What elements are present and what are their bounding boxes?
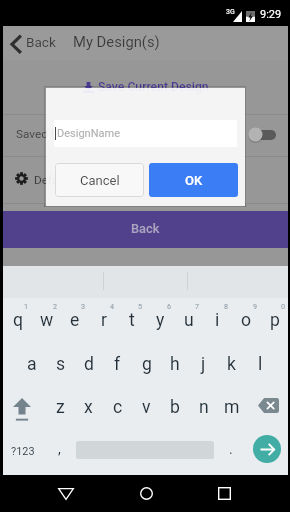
- button[interactable]: Saved Designs: [3, 115, 288, 157]
- button[interactable]: o: [232, 298, 261, 342]
- staticText: o: [241, 310, 252, 331]
- button[interactable]: Default Design: [3, 157, 288, 203]
- staticText: j: [201, 354, 206, 375]
- staticText: p: [270, 310, 280, 331]
- staticText: m: [224, 397, 240, 418]
- staticText: Back: [131, 221, 160, 236]
- staticText: z: [56, 397, 65, 418]
- staticText: ,: [58, 441, 61, 457]
- staticText: Save Current Design: [98, 80, 209, 94]
- staticText: q: [13, 310, 23, 331]
- button[interactable]: j: [189, 342, 218, 386]
- button[interactable]: t: [117, 298, 146, 342]
- staticText: 5: [138, 302, 143, 310]
- button[interactable]: g: [132, 342, 161, 386]
- staticText: 4: [110, 302, 115, 310]
- staticText: Cancel: [80, 173, 120, 188]
- button[interactable]: ,: [45, 429, 74, 473]
- button[interactable]: Enter: [253, 435, 281, 463]
- staticText: g: [142, 354, 152, 375]
- staticText: c: [113, 397, 123, 418]
- button[interactable]: OK: [149, 163, 238, 197]
- button[interactable]: s: [46, 342, 75, 386]
- button[interactable]: d: [74, 342, 103, 386]
- staticText: u: [184, 310, 194, 331]
- button[interactable]: Home: [122, 475, 170, 512]
- staticText: 3G: [226, 8, 235, 16]
- button[interactable]: Shift: [3, 385, 45, 429]
- staticText: My Design(s): [73, 33, 160, 50]
- staticText: 2: [53, 302, 58, 310]
- staticText: e: [70, 310, 80, 331]
- staticText: Saved Designs: [16, 127, 93, 141]
- button[interactable]: c: [103, 385, 132, 429]
- staticText: Default Design: [34, 173, 111, 187]
- button[interactable]: ?123: [3, 429, 45, 473]
- staticText: 1: [24, 302, 29, 310]
- button[interactable]: Save Current Design: [3, 60, 288, 114]
- staticText: a: [27, 354, 37, 375]
- button[interactable]: .: [216, 429, 245, 473]
- staticText: n: [199, 397, 209, 418]
- button[interactable]: Back: [3, 211, 288, 248]
- button[interactable]: b: [160, 385, 189, 429]
- button[interactable]: Cancel: [55, 163, 144, 197]
- staticText: 9: [253, 302, 258, 310]
- staticText: x: [84, 397, 93, 418]
- button[interactable]: h: [160, 342, 189, 386]
- button[interactable]: i: [203, 298, 232, 342]
- button[interactable]: z: [46, 385, 75, 429]
- staticText: w: [40, 310, 54, 331]
- staticText: h: [170, 354, 180, 375]
- button[interactable]: y: [146, 298, 175, 342]
- staticText: s: [56, 354, 66, 375]
- button[interactable]: m: [217, 385, 246, 429]
- staticText: b: [170, 397, 180, 418]
- staticText: 8: [224, 302, 229, 310]
- button[interactable]: f: [103, 342, 132, 386]
- staticText: Back: [26, 34, 56, 50]
- button[interactable]: x: [74, 385, 103, 429]
- staticText: d: [84, 354, 94, 375]
- button[interactable]: Back: [42, 475, 90, 512]
- button[interactable]: Backspace: [245, 385, 287, 429]
- button[interactable]: a: [17, 342, 46, 386]
- staticText: 9:29: [260, 8, 282, 21]
- button[interactable]: v: [132, 385, 161, 429]
- button[interactable]: Back: [6, 28, 60, 58]
- button[interactable]: w: [32, 298, 61, 342]
- staticText: 3: [81, 302, 86, 310]
- staticText: 7: [195, 302, 200, 310]
- staticText: t: [129, 310, 135, 331]
- button[interactable]: Recent apps: [200, 475, 248, 512]
- button[interactable]: n: [189, 385, 218, 429]
- staticText: OK: [185, 173, 203, 188]
- staticText: .: [229, 441, 233, 457]
- staticText: DesignName: [57, 127, 120, 140]
- staticText: i: [215, 310, 220, 331]
- button[interactable]: e: [60, 298, 89, 342]
- staticText: 6: [167, 302, 172, 310]
- staticText: 0: [281, 302, 286, 310]
- staticText: f: [114, 354, 121, 375]
- staticText: ?123: [11, 445, 35, 458]
- staticText: k: [227, 354, 236, 375]
- button[interactable]: k: [217, 342, 246, 386]
- button[interactable]: l: [246, 342, 275, 386]
- staticText: y: [156, 310, 165, 331]
- button[interactable]: q: [3, 298, 32, 342]
- button[interactable]: p: [260, 298, 289, 342]
- button[interactable]: r: [89, 298, 118, 342]
- button[interactable]: u: [174, 298, 203, 342]
- staticText: v: [142, 397, 151, 418]
- staticText: l: [258, 354, 263, 375]
- staticText: r: [101, 310, 107, 331]
